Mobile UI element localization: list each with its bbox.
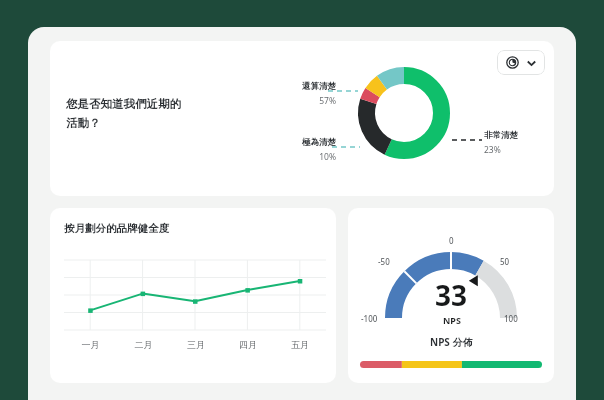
staticText: 50 [500,256,510,267]
staticText: 四月 [222,339,274,350]
staticText: 五月 [274,339,326,350]
staticText: 10% [278,151,336,163]
staticText: 100 [504,313,518,324]
staticText: 三月 [170,339,222,350]
button[interactable]: Select chart type [497,50,545,75]
staticText: 非常清楚 [484,130,544,141]
staticText: NPS [443,314,461,326]
staticText: 一月 [64,339,117,350]
staticText: 還算清楚 [278,81,336,92]
staticText: -50 [378,256,390,267]
staticText: 按月劃分的品牌健全度 [64,222,169,235]
staticText: -100 [361,313,378,324]
staticText: 0 [449,235,454,246]
staticText: 57% [278,95,336,107]
staticText: 您是否知道我們近期的 活動？ [66,97,181,131]
staticText: NPS 分佈 [430,335,473,349]
staticText: 極為清楚 [278,137,336,148]
staticText: 23% [484,144,544,156]
staticText: 33 [435,276,468,314]
staticText: 二月 [117,339,170,350]
